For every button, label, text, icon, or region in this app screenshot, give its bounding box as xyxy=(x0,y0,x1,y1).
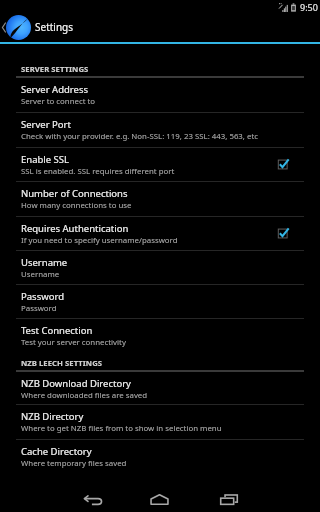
staticText: Cache Directory xyxy=(21,445,92,458)
button[interactable]: Server Port xyxy=(0,113,320,148)
staticText: Where to get NZB files from to show in s… xyxy=(21,423,222,434)
button[interactable]: Recent apps xyxy=(211,487,246,512)
button[interactable]: Enable SSL xyxy=(0,148,320,182)
staticText: Where downloaded files are saved xyxy=(21,390,148,401)
button[interactable]: Home xyxy=(142,487,177,512)
button[interactable]: Cache Directory xyxy=(0,440,320,474)
staticText: Test Connection xyxy=(21,324,93,337)
button[interactable]: Number of Connections xyxy=(0,182,320,217)
staticText: 9:50 xyxy=(300,1,318,13)
staticText: How many connections to use xyxy=(21,200,132,211)
staticText: Number of Connections xyxy=(21,187,128,200)
staticText: Password xyxy=(21,303,57,314)
staticText: NZB Download Directory xyxy=(21,377,131,390)
staticText: Username xyxy=(21,269,60,280)
button[interactable]: Requires Authentication xyxy=(0,217,320,251)
staticText: Password xyxy=(21,290,64,303)
staticText: Settings xyxy=(35,20,74,34)
staticText: Where temporary files saved xyxy=(21,458,127,469)
button[interactable]: NZB Directory xyxy=(0,405,320,440)
staticText: NZB Directory xyxy=(21,410,84,423)
button[interactable]: Password xyxy=(0,285,320,319)
button[interactable]: Navigate up xyxy=(0,14,31,42)
staticText: Server Port xyxy=(21,118,71,131)
staticText: Server Address xyxy=(21,83,89,96)
other: Toggle xyxy=(277,227,290,240)
button[interactable]: Test Connection xyxy=(0,319,320,353)
staticText: Requires Authentication xyxy=(21,222,129,235)
button[interactable]: Username xyxy=(0,251,320,285)
other: Toggle xyxy=(277,158,290,171)
button[interactable]: NZB Download Directory xyxy=(0,372,320,405)
staticText: Server to connect to xyxy=(21,96,96,107)
staticText: Check with your provider. e.g. Non-SSL: … xyxy=(21,131,259,142)
button[interactable]: Server Address xyxy=(0,78,320,113)
staticText: NZB LEECH SETTINGS xyxy=(21,358,103,368)
button[interactable]: Back xyxy=(75,487,110,512)
staticText: SERVER SETTINGS xyxy=(21,64,89,74)
staticText: Test your server connectivity xyxy=(21,337,126,348)
staticText: SSL is enabled. SSL requires different p… xyxy=(21,166,175,177)
staticText: Enable SSL xyxy=(21,153,70,166)
staticText: If you need to specify username/password xyxy=(21,235,178,246)
staticText: Username xyxy=(21,256,68,269)
